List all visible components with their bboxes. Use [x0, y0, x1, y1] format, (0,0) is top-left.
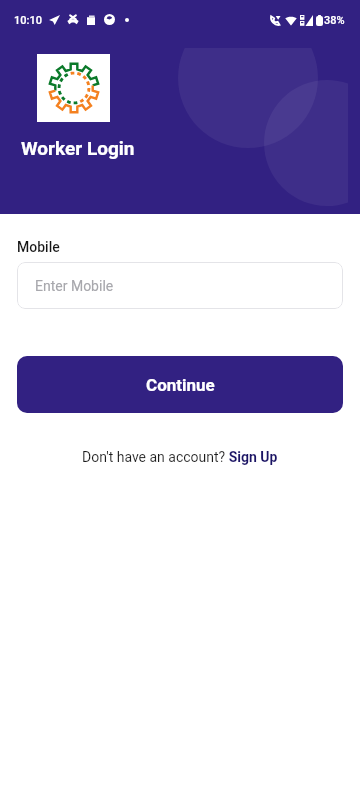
staticText: Enter Mobile: [35, 278, 114, 294]
staticText: Mobile: [17, 239, 60, 255]
button[interactable]: Don't have an account? Sign Up: [82, 449, 278, 465]
staticText: 38%: [324, 14, 345, 27]
staticText: 10:10: [14, 14, 42, 27]
button[interactable]: Continue: [17, 356, 343, 413]
staticText: Continue: [146, 375, 215, 395]
staticText: Worker Login: [21, 137, 135, 159]
button[interactable]: Enter Mobile: [17, 262, 343, 309]
